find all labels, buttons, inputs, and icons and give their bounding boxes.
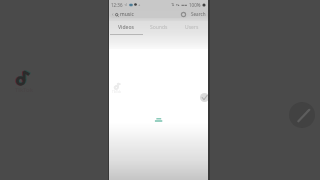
button[interactable]: Videos [109, 21, 142, 34]
button[interactable]: Sounds [142, 21, 175, 34]
staticText: 100% [189, 2, 201, 8]
staticText: Users [185, 24, 199, 31]
button[interactable]: Users [175, 21, 208, 34]
button[interactable]: Clear [181, 12, 186, 17]
button[interactable]: Next [200, 93, 209, 102]
staticText: ▾▴ [176, 3, 180, 7]
staticText: + [138, 2, 141, 7]
button[interactable]: Edit [289, 102, 315, 128]
button[interactable]: Search [191, 11, 206, 17]
staticText: ▬▬ [181, 3, 188, 7]
staticText: Sounds [150, 24, 168, 31]
staticText: ‹ [112, 11, 114, 18]
staticText: Videos [118, 24, 134, 31]
staticText: TikTok [112, 90, 121, 94]
staticText: ⇅ [171, 2, 175, 7]
button[interactable]: ‹ [110, 11, 188, 18]
staticText: Search [191, 11, 206, 17]
staticText: music [120, 11, 134, 18]
staticText: ·ıl [124, 2, 128, 7]
staticText: 12:36 [111, 2, 123, 8]
